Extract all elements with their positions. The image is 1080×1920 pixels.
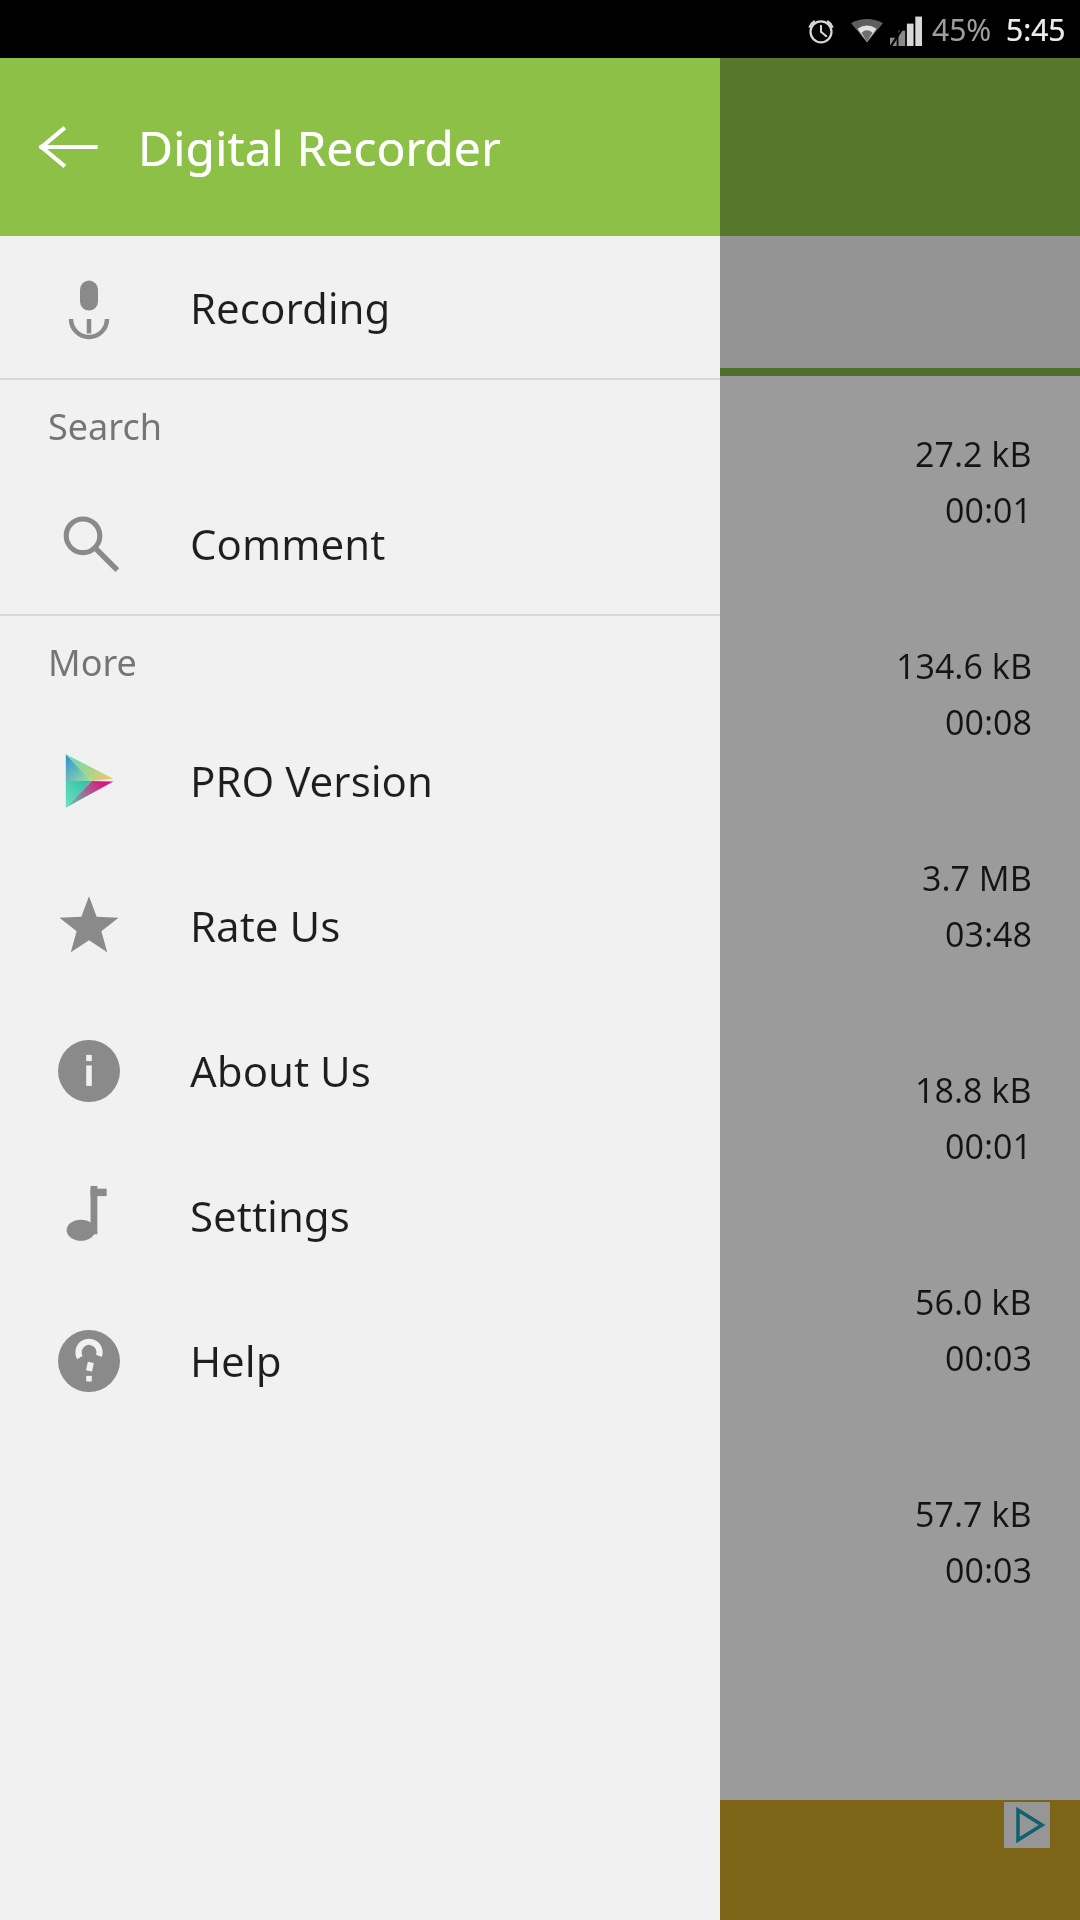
staticText: 00:03 — [945, 1547, 1032, 1593]
button[interactable]: Recording — [0, 236, 720, 378]
staticText: 134.6 kB — [896, 643, 1032, 689]
staticText: 03:48 — [945, 911, 1032, 957]
staticText: 18.8 kB — [915, 1067, 1032, 1113]
staticText: 00:01 — [945, 487, 1032, 533]
staticText: 56.0 kB — [915, 1279, 1032, 1325]
staticText: 00:08 — [945, 699, 1032, 745]
button[interactable]: Comment — [0, 472, 720, 614]
staticText: 00:03 — [945, 1335, 1032, 1381]
staticText: Recording — [190, 279, 391, 336]
staticText: 3.7 MB — [922, 855, 1032, 901]
button[interactable]: PRO Version — [0, 708, 720, 853]
button[interactable]: About Us — [0, 998, 720, 1143]
button[interactable]: Back — [30, 109, 106, 185]
staticText: More — [48, 638, 137, 687]
staticText: 5:45 — [1006, 9, 1066, 50]
button[interactable]: Settings — [0, 1143, 720, 1288]
staticText: PRO Version — [190, 752, 433, 809]
staticText: 57.7 kB — [915, 1491, 1032, 1537]
staticText: Search — [48, 402, 162, 451]
staticText: About Us — [190, 1042, 371, 1099]
button[interactable]: Help — [0, 1288, 720, 1433]
staticText: Comment — [190, 515, 386, 572]
staticText: Help — [190, 1332, 282, 1389]
staticText: Digital Recorder — [138, 115, 501, 180]
staticText: Rate Us — [190, 897, 341, 954]
staticText: 27.2 kB — [915, 431, 1032, 477]
button[interactable]: Rate Us — [0, 853, 720, 998]
staticText: 00:01 — [945, 1123, 1032, 1169]
staticText: Settings — [190, 1187, 350, 1244]
staticText: 45% — [932, 9, 992, 50]
